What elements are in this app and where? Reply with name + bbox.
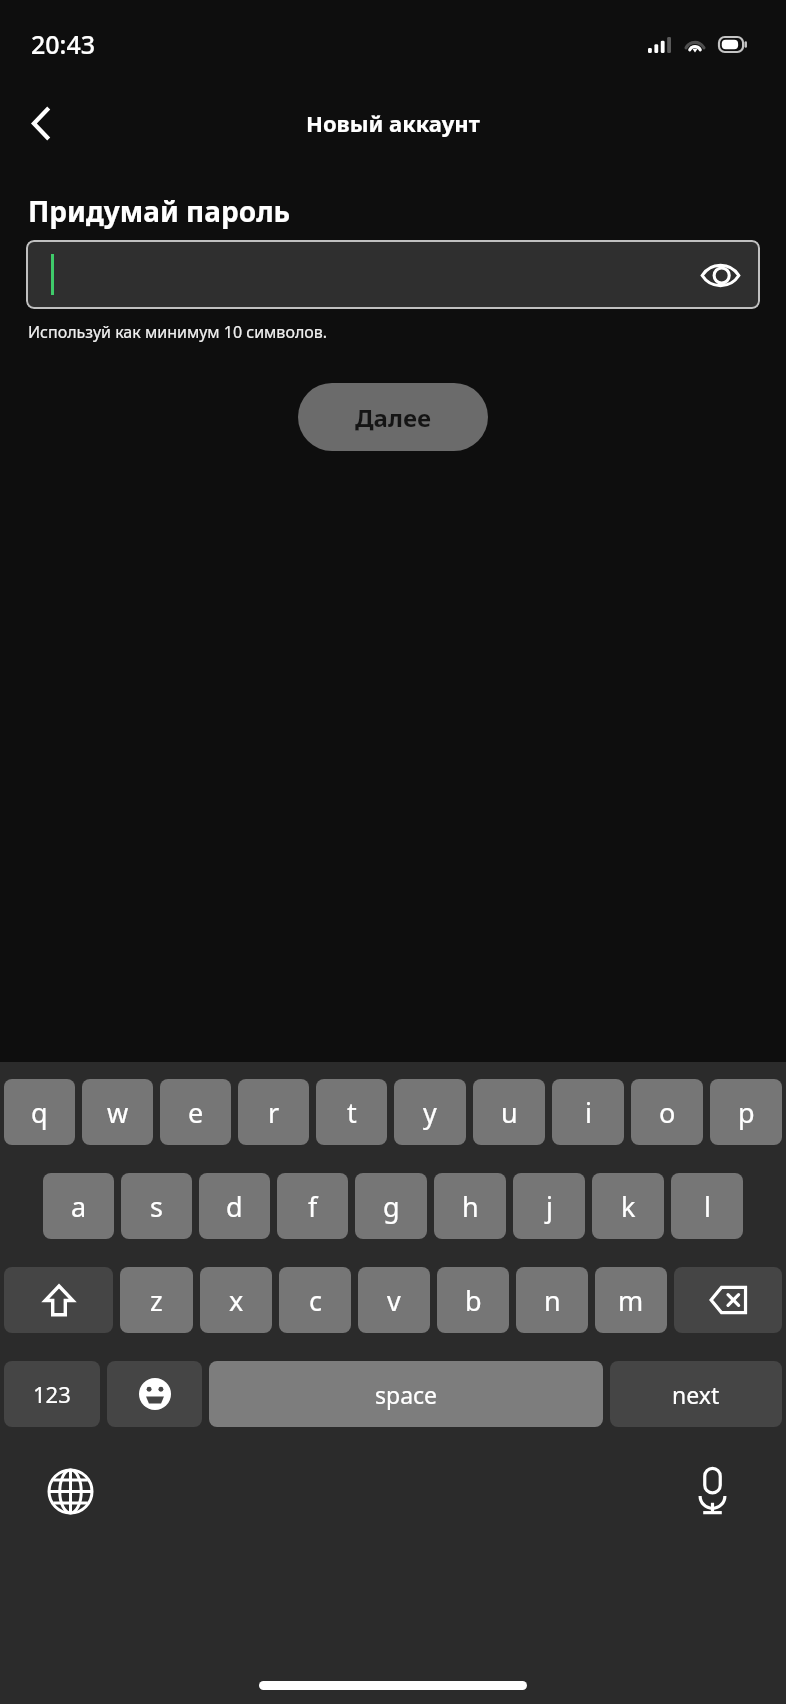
staticText: Далее bbox=[355, 401, 431, 434]
staticText: k bbox=[621, 1188, 636, 1225]
button[interactable]: space bbox=[209, 1361, 603, 1427]
staticText: x bbox=[229, 1282, 244, 1319]
staticText: e bbox=[188, 1094, 204, 1131]
staticText: t bbox=[347, 1094, 357, 1131]
button[interactable]: k bbox=[592, 1173, 664, 1239]
button[interactable]: Show password bbox=[694, 249, 746, 301]
staticText: o bbox=[659, 1094, 676, 1131]
button[interactable]: v bbox=[358, 1267, 430, 1333]
staticText: n bbox=[544, 1282, 561, 1319]
button[interactable]: next bbox=[610, 1361, 782, 1427]
staticText: f bbox=[308, 1188, 318, 1225]
staticText: y bbox=[423, 1094, 437, 1131]
button[interactable]: d bbox=[199, 1173, 270, 1239]
staticText: l bbox=[704, 1188, 711, 1225]
staticText: 20:43 bbox=[31, 27, 96, 61]
staticText: p bbox=[738, 1094, 755, 1131]
button[interactable]: n bbox=[516, 1267, 588, 1333]
staticText: u bbox=[501, 1094, 518, 1131]
staticText: v bbox=[387, 1282, 401, 1319]
button[interactable]: g bbox=[355, 1173, 427, 1239]
button[interactable]: s bbox=[121, 1173, 192, 1239]
staticText: next bbox=[672, 1379, 720, 1410]
button[interactable]: l bbox=[671, 1173, 743, 1239]
button[interactable]: y bbox=[394, 1079, 466, 1145]
button[interactable]: z bbox=[120, 1267, 193, 1333]
button[interactable]: m bbox=[595, 1267, 667, 1333]
staticText: Новый аккаунт bbox=[306, 108, 480, 138]
staticText: i bbox=[585, 1094, 592, 1131]
staticText: h bbox=[462, 1188, 479, 1225]
button[interactable]: a bbox=[43, 1173, 114, 1239]
staticText: Используй как минимум 10 символов. bbox=[28, 321, 328, 343]
button[interactable]: j bbox=[513, 1173, 585, 1239]
button[interactable]: e bbox=[160, 1079, 231, 1145]
button[interactable]: h bbox=[434, 1173, 506, 1239]
staticText: w bbox=[107, 1094, 129, 1131]
staticText: j bbox=[546, 1188, 553, 1225]
button[interactable]: Backspace bbox=[674, 1267, 782, 1333]
staticText: r bbox=[268, 1094, 280, 1131]
staticText: Придумай пароль bbox=[28, 192, 291, 230]
button[interactable]: p bbox=[710, 1079, 782, 1145]
button[interactable]: Back bbox=[12, 94, 70, 152]
button[interactable]: i bbox=[552, 1079, 624, 1145]
button[interactable]: t bbox=[316, 1079, 387, 1145]
staticText: z bbox=[150, 1282, 163, 1319]
staticText: q bbox=[31, 1094, 48, 1131]
button[interactable]: o bbox=[631, 1079, 703, 1145]
button[interactable]: w bbox=[82, 1079, 153, 1145]
staticText: a bbox=[71, 1188, 87, 1225]
button[interactable]: q bbox=[4, 1079, 75, 1145]
button[interactable]: x bbox=[200, 1267, 272, 1333]
staticText: s bbox=[150, 1188, 163, 1225]
button[interactable]: Change language bbox=[38, 1459, 102, 1523]
button[interactable]: Далее bbox=[298, 383, 488, 451]
staticText: b bbox=[465, 1282, 482, 1319]
staticText: d bbox=[226, 1188, 243, 1225]
button[interactable]: Emoji bbox=[107, 1361, 202, 1427]
staticText: m bbox=[618, 1282, 644, 1319]
button[interactable]: u bbox=[473, 1079, 545, 1145]
button[interactable]: 123 bbox=[4, 1361, 100, 1427]
button[interactable]: b bbox=[437, 1267, 509, 1333]
button[interactable]: c bbox=[279, 1267, 351, 1333]
button[interactable]: Shift bbox=[4, 1267, 113, 1333]
staticText: g bbox=[383, 1188, 400, 1225]
staticText: space bbox=[375, 1379, 438, 1410]
staticText: 123 bbox=[33, 1379, 71, 1409]
button[interactable]: Voice input bbox=[680, 1459, 744, 1523]
button[interactable]: r bbox=[238, 1079, 309, 1145]
button[interactable]: f bbox=[277, 1173, 348, 1239]
staticText: c bbox=[309, 1282, 322, 1319]
button[interactable]: Show password bbox=[26, 240, 760, 309]
